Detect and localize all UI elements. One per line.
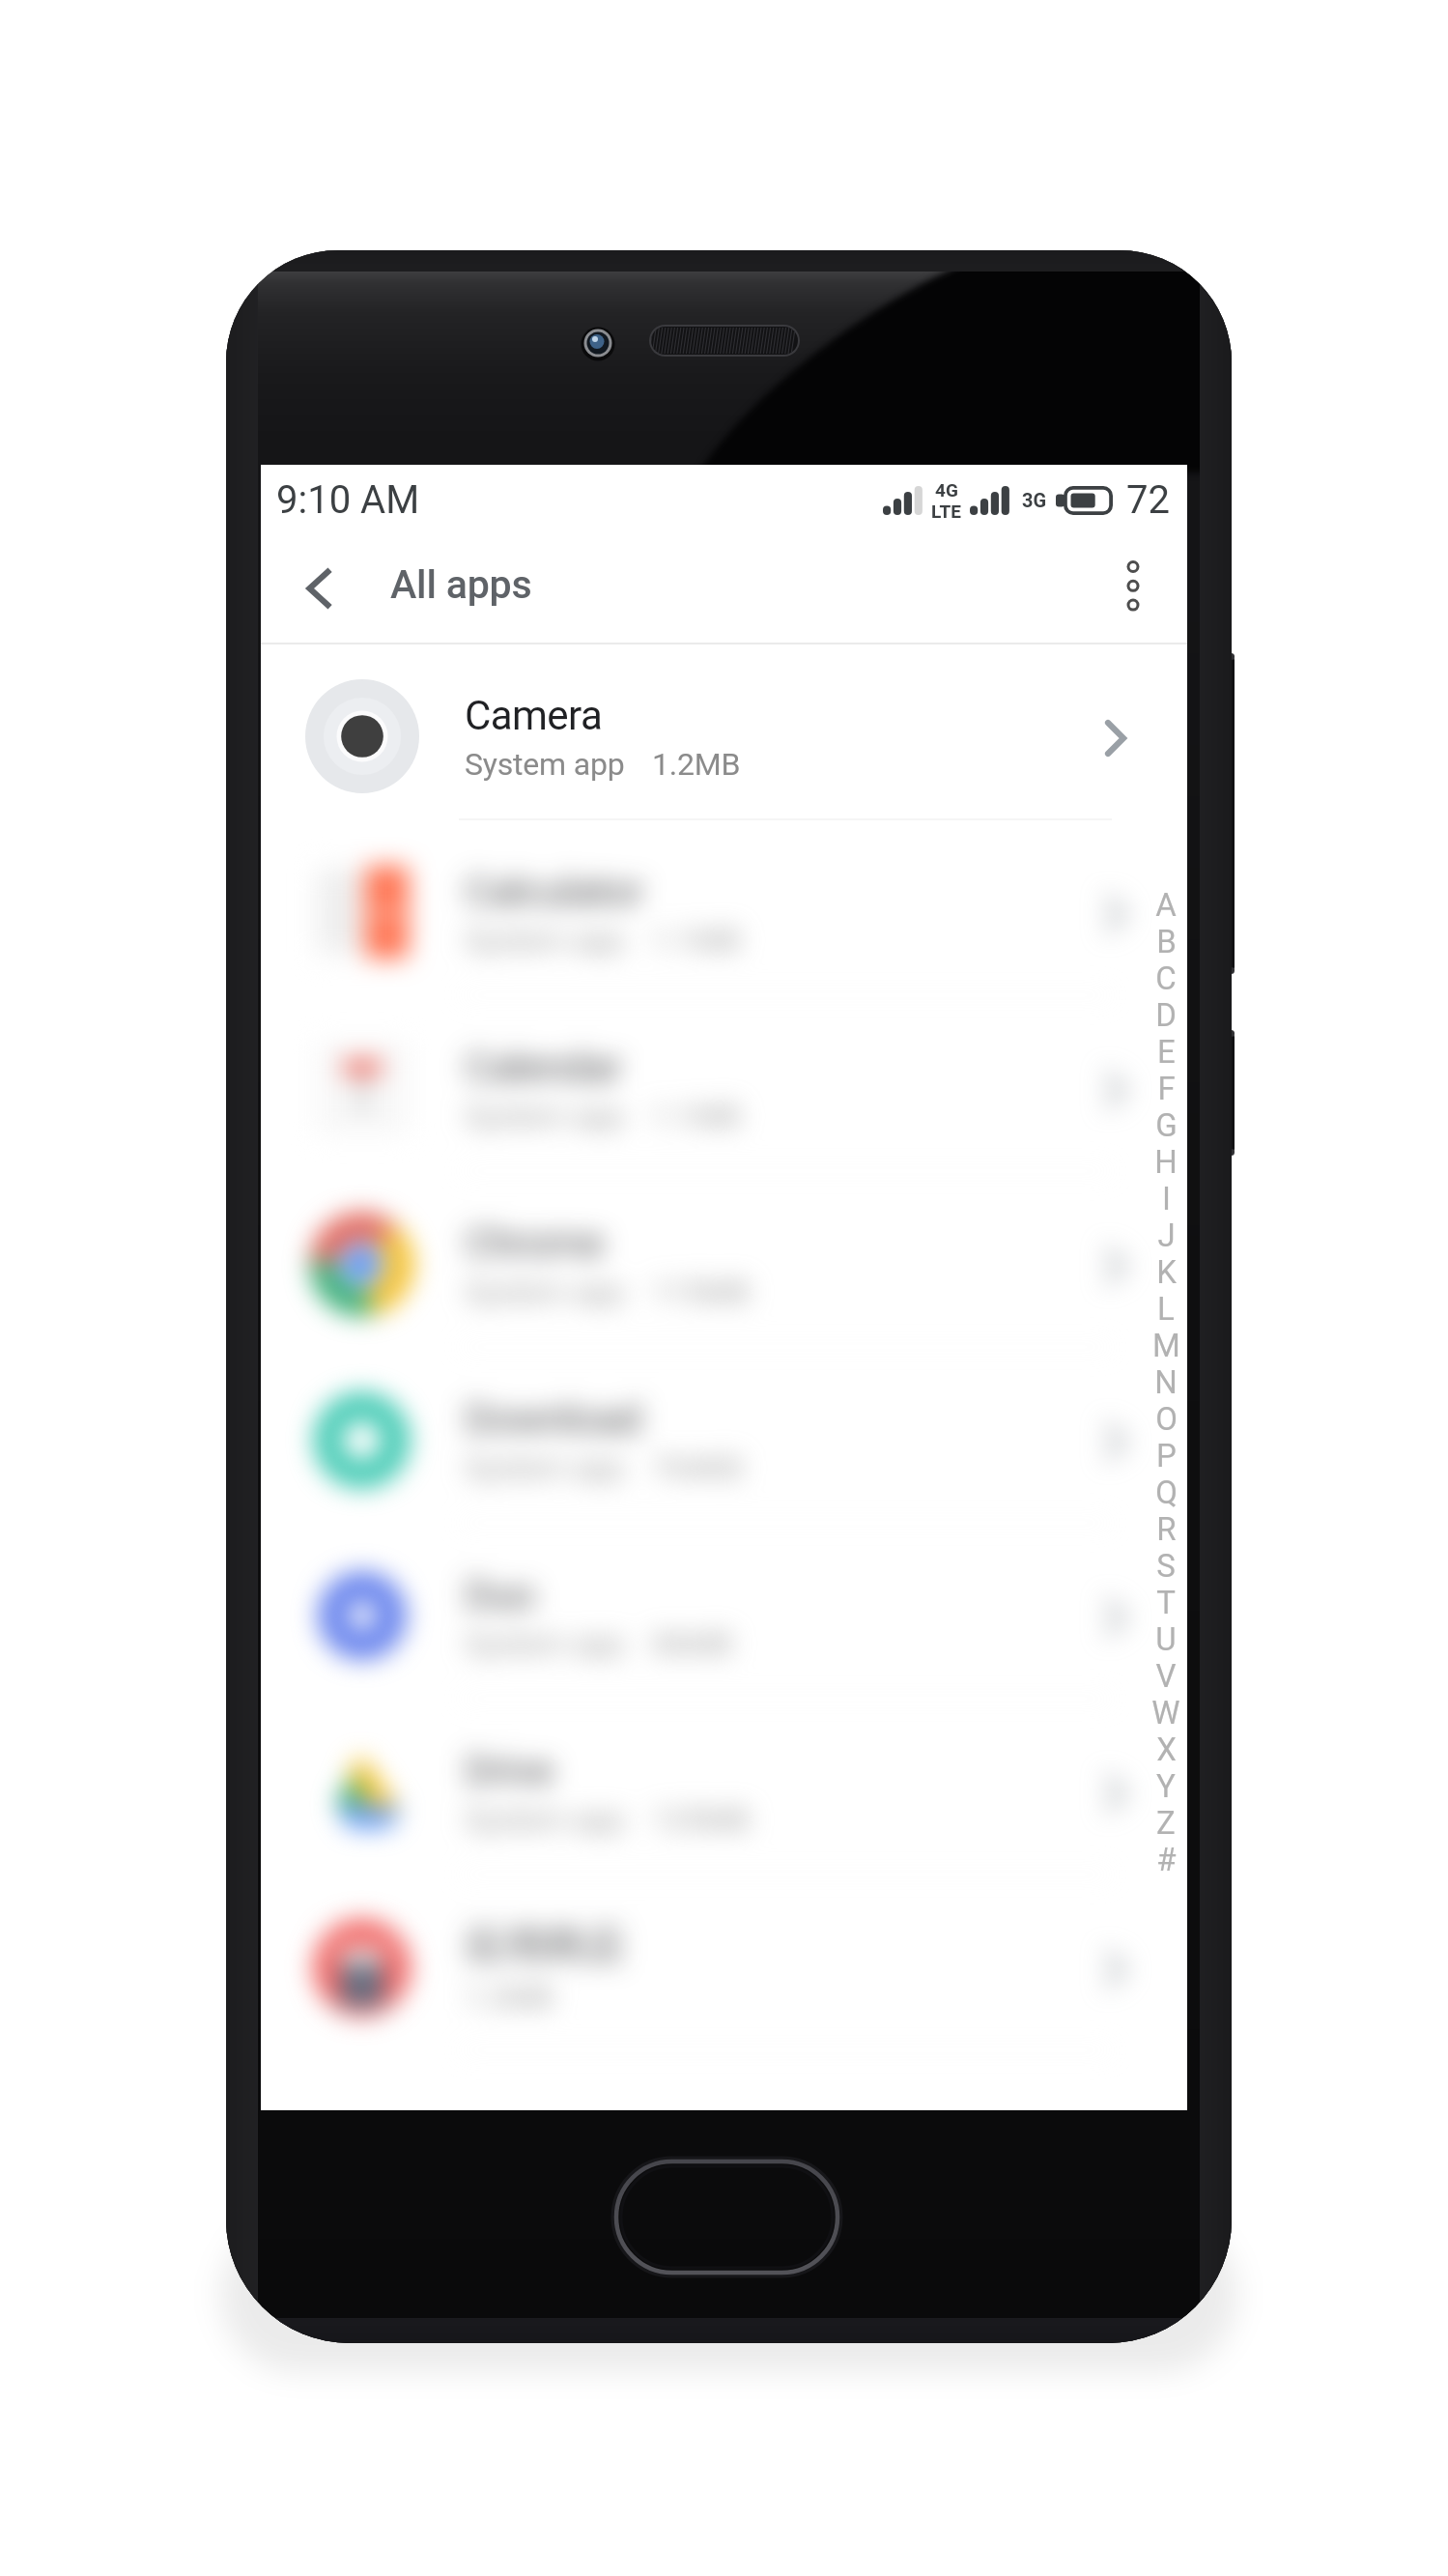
staticText: System app [465, 1449, 625, 1486]
staticText: P [1156, 1437, 1177, 1474]
staticText: Calculator [465, 868, 643, 915]
staticText: S [1156, 1547, 1176, 1584]
staticText: Y [1156, 1767, 1176, 1804]
staticText: 1.1MB [652, 1098, 741, 1134]
staticText: T [1156, 1584, 1176, 1620]
staticText: 4G [935, 479, 958, 501]
staticText: R [1156, 1510, 1177, 1547]
staticText: Duo [465, 1571, 536, 1618]
button[interactable]: Drive [261, 1700, 1187, 1874]
staticText: 应用商店 [465, 1921, 625, 1972]
button[interactable]: More options [1079, 534, 1187, 643]
staticText: Calendar [465, 1044, 622, 1091]
staticText: 1.2MB [652, 746, 741, 783]
staticText: A [1155, 886, 1177, 923]
staticText: J [1157, 1216, 1176, 1253]
staticText: E [1157, 1033, 1176, 1070]
staticText: System app [465, 1625, 625, 1662]
staticText: System app [465, 1801, 625, 1838]
staticText: System app [465, 1274, 625, 1310]
staticText: Camera [465, 692, 603, 739]
button[interactable]: Back [267, 534, 375, 643]
staticText: M [1152, 1327, 1180, 1363]
staticText: 125MB [652, 1801, 750, 1838]
staticText: B [1156, 923, 1177, 959]
staticText: 115MB [652, 1274, 750, 1310]
staticText: D [1155, 996, 1177, 1033]
staticText: System app [465, 1098, 625, 1134]
button[interactable]: Calendar [261, 996, 1187, 1170]
staticText: U [1155, 1620, 1177, 1657]
button[interactable]: 应用商店 [261, 1875, 1187, 2049]
staticText: G [1155, 1106, 1178, 1143]
staticText: System app [465, 922, 625, 959]
staticText: All apps [390, 561, 532, 608]
staticText: 9:10 AM [276, 477, 420, 523]
staticText: 72 [1126, 477, 1170, 523]
staticText: I [1162, 1180, 1171, 1216]
staticText: Download [465, 1395, 641, 1443]
staticText: X [1156, 1731, 1177, 1767]
staticText: H [1154, 1143, 1178, 1180]
staticText: Q [1155, 1474, 1178, 1510]
staticText: 86MB [652, 1625, 733, 1662]
staticText: F [1157, 1070, 1176, 1106]
staticText: 1.2MB [465, 1979, 554, 2016]
staticText: V [1155, 1657, 1177, 1694]
staticText: C [1155, 959, 1177, 996]
staticText: LTE [931, 501, 961, 522]
staticText: W [1151, 1694, 1180, 1731]
staticText: L [1157, 1290, 1175, 1327]
staticText: Z [1156, 1804, 1176, 1841]
staticText: # [1156, 1841, 1177, 1877]
staticText: N [1154, 1363, 1178, 1400]
button[interactable]: Download [261, 1348, 1187, 1522]
button[interactable]: Duo [261, 1524, 1187, 1698]
button[interactable]: Camera [261, 644, 1187, 818]
staticText: 3G [1022, 489, 1047, 511]
button[interactable]: Calculator [261, 820, 1187, 994]
staticText: System app [465, 746, 625, 783]
staticText: O [1155, 1400, 1178, 1437]
staticText: Chrome [465, 1219, 605, 1267]
staticText: 764KB [652, 1449, 742, 1486]
staticText: K [1156, 1253, 1177, 1290]
staticText: 1.1MB [652, 922, 741, 959]
button[interactable]: Chrome [261, 1172, 1187, 1346]
staticText: Drive [465, 1747, 554, 1794]
